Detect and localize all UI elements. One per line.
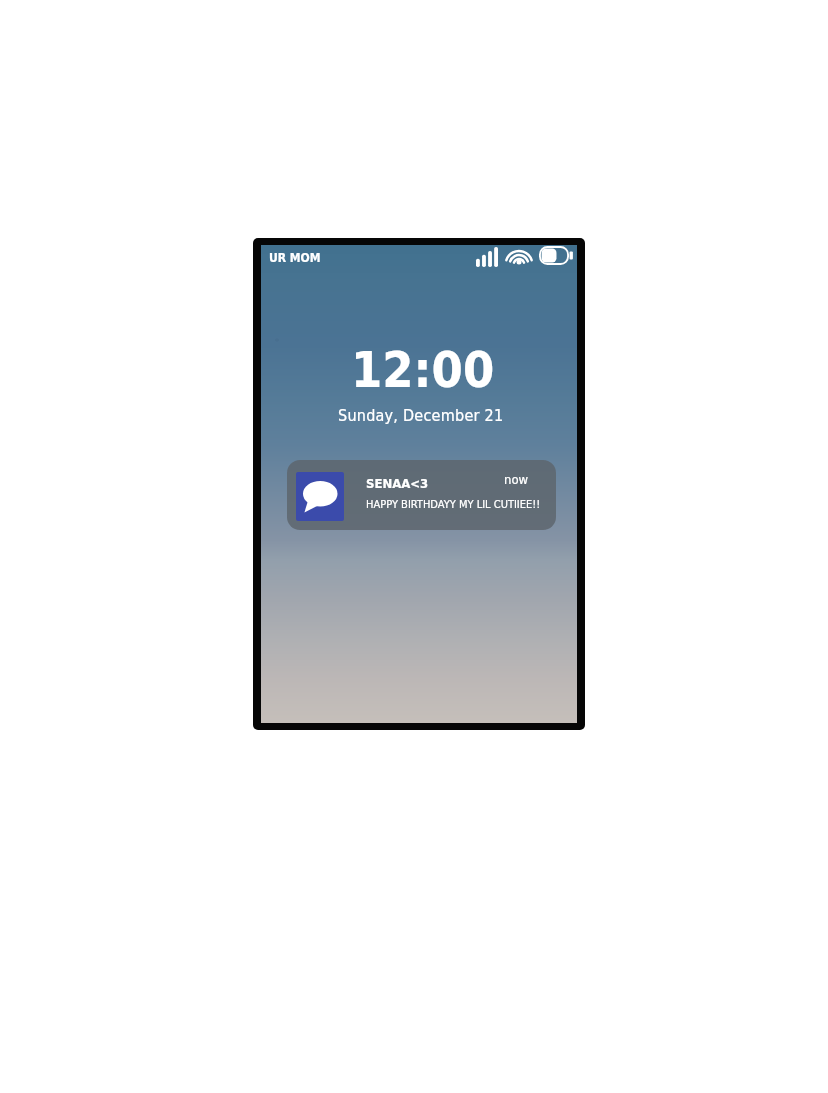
staticText: Sunday, December 21 <box>338 406 504 425</box>
other: Battery 55 percent <box>539 246 574 265</box>
other: Cellular signal, 4 bars <box>476 247 498 267</box>
staticText: now <box>504 472 529 487</box>
staticText: UR MOM <box>269 251 321 265</box>
staticText: SENAA<3 <box>366 476 429 491</box>
button[interactable]: Messages <box>287 460 556 530</box>
staticText: HAPPY BIRTHDAYY MY LIL CUTIIEE!! <box>366 498 541 511</box>
staticText: 12:00 <box>351 341 495 399</box>
other: Messages <box>296 472 344 521</box>
other: Wi-Fi connected <box>506 248 532 265</box>
